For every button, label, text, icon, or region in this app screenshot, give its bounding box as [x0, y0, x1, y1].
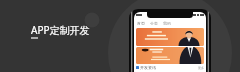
button[interactable]: 首页	[137, 21, 145, 25]
button[interactable]	[136, 47, 204, 64]
button[interactable]	[136, 28, 204, 46]
staticText: 更多	[198, 66, 204, 70]
staticText: 分类	[150, 21, 158, 25]
staticText: APP定制开发	[31, 23, 90, 37]
button[interactable]: 我的	[163, 21, 171, 25]
staticText: 首页	[137, 21, 145, 25]
button[interactable]: 分类	[150, 21, 158, 25]
staticText: 开发资讯	[140, 65, 156, 70]
button[interactable]: 开发资讯	[136, 65, 204, 70]
staticText: 我的	[163, 21, 171, 25]
